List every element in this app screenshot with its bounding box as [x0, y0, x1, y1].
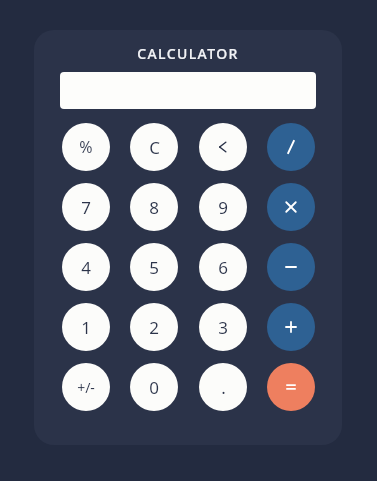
button[interactable]: Equals [267, 363, 315, 411]
staticText: . [221, 376, 226, 399]
button[interactable]: +/- [62, 363, 110, 411]
staticText: +/- [77, 378, 95, 397]
button[interactable]: 8 [130, 183, 178, 231]
staticText: 8 [149, 196, 159, 219]
staticText: 2 [149, 316, 159, 339]
staticText: 1 [81, 316, 91, 339]
button[interactable]: Multiply [267, 183, 315, 231]
button[interactable]: Minus [267, 243, 315, 291]
staticText: 3 [218, 316, 228, 339]
button[interactable]: 2 [130, 303, 178, 351]
button[interactable]: % [62, 123, 110, 171]
button[interactable]: 0 [130, 363, 178, 411]
staticText: 0 [149, 376, 159, 399]
staticText: 6 [218, 256, 228, 279]
staticText: 5 [149, 256, 159, 279]
button[interactable] [60, 72, 316, 109]
staticText: CALCULATOR [137, 44, 239, 63]
staticText: 7 [81, 196, 91, 219]
button[interactable]: Divide [267, 123, 315, 171]
staticText: C [149, 136, 160, 159]
staticText: % [79, 136, 93, 158]
staticText: 9 [218, 196, 228, 219]
button[interactable]: Plus [267, 303, 315, 351]
button[interactable]: . [199, 363, 247, 411]
button[interactable]: 5 [130, 243, 178, 291]
staticText: 4 [81, 256, 91, 279]
button[interactable]: 9 [199, 183, 247, 231]
button[interactable]: 4 [62, 243, 110, 291]
button[interactable]: 6 [199, 243, 247, 291]
button[interactable]: 7 [62, 183, 110, 231]
button[interactable]: 3 [199, 303, 247, 351]
button[interactable]: 1 [62, 303, 110, 351]
button[interactable]: Backspace [199, 123, 247, 171]
button[interactable]: C [130, 123, 178, 171]
